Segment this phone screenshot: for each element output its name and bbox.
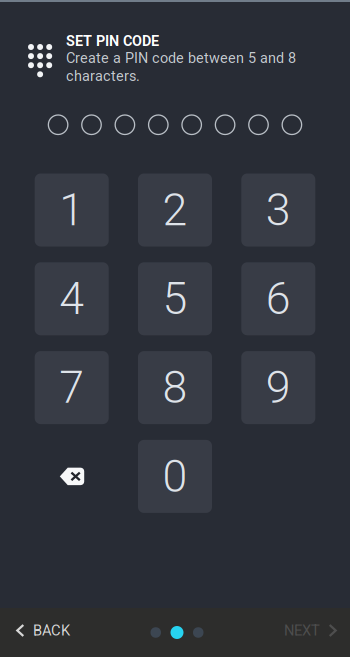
staticText: 8 [162,361,187,414]
staticText: 0 [162,450,187,502]
staticText: 7 [59,361,84,414]
staticText: 5 [162,273,187,325]
staticText: BACK [33,622,70,639]
button[interactable]: 5 [138,262,212,335]
button[interactable]: 7 [35,351,109,424]
staticText: Create a PIN code between 5 and 8 [66,50,296,66]
button[interactable]: 2 [138,173,212,246]
button[interactable]: 9 [241,351,315,424]
button[interactable]: BACK [0,610,82,655]
button[interactable]: 8 [138,351,212,424]
button[interactable]: 1 [35,173,109,246]
staticText: NEXT [284,622,320,639]
button[interactable]: Delete [35,440,109,513]
staticText: 9 [266,361,291,414]
staticText: SET PIN CODE [66,33,159,49]
button[interactable]: 4 [35,262,109,335]
staticText: 2 [162,184,187,236]
staticText: 1 [59,184,84,236]
button[interactable]: 6 [241,262,315,335]
staticText: characters. [66,68,140,84]
button[interactable]: NEXT [272,610,350,655]
staticText: 4 [59,273,84,325]
staticText: 6 [266,273,291,325]
button[interactable]: 3 [241,173,315,246]
button[interactable]: 0 [138,440,212,513]
staticText: 3 [266,184,291,236]
